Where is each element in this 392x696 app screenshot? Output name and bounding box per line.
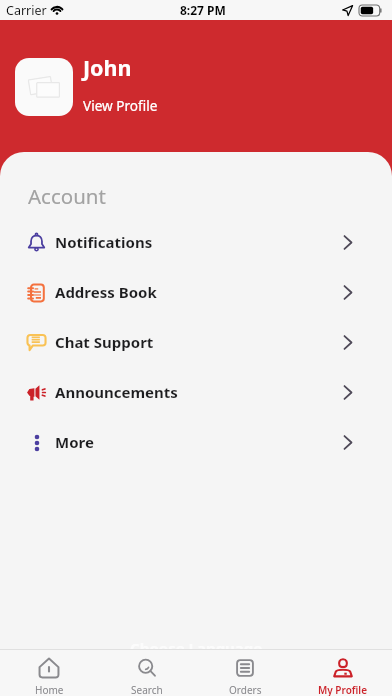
staticText: More <box>55 432 94 452</box>
other: Profile photo <box>15 58 73 116</box>
staticText: John <box>83 53 132 82</box>
button[interactable]: Address Book <box>0 267 392 317</box>
staticText: Chat Support <box>55 332 154 352</box>
staticText: Account <box>28 182 106 210</box>
button[interactable]: Announcements <box>0 367 392 417</box>
button[interactable]: Notifications <box>0 217 392 267</box>
staticText: View Profile <box>83 96 158 115</box>
staticText: Announcements <box>55 382 178 402</box>
button[interactable]: More <box>0 417 392 467</box>
staticText: Orders <box>229 683 262 696</box>
button[interactable]: Orders <box>196 650 294 696</box>
staticText: Carrier <box>6 2 47 19</box>
staticText: Address Book <box>55 282 157 302</box>
staticText: Notifications <box>55 232 153 252</box>
button[interactable]: Home <box>0 650 98 696</box>
button[interactable]: My Profile <box>294 650 392 696</box>
button[interactable]: Profile photo <box>0 56 392 118</box>
staticText: Search <box>131 683 163 696</box>
staticText: 8:27 PM <box>180 2 226 18</box>
staticText: My Profile <box>318 683 368 696</box>
button[interactable]: Chat Support <box>0 317 392 367</box>
button[interactable]: Search <box>98 650 196 696</box>
staticText: Home <box>35 683 64 696</box>
